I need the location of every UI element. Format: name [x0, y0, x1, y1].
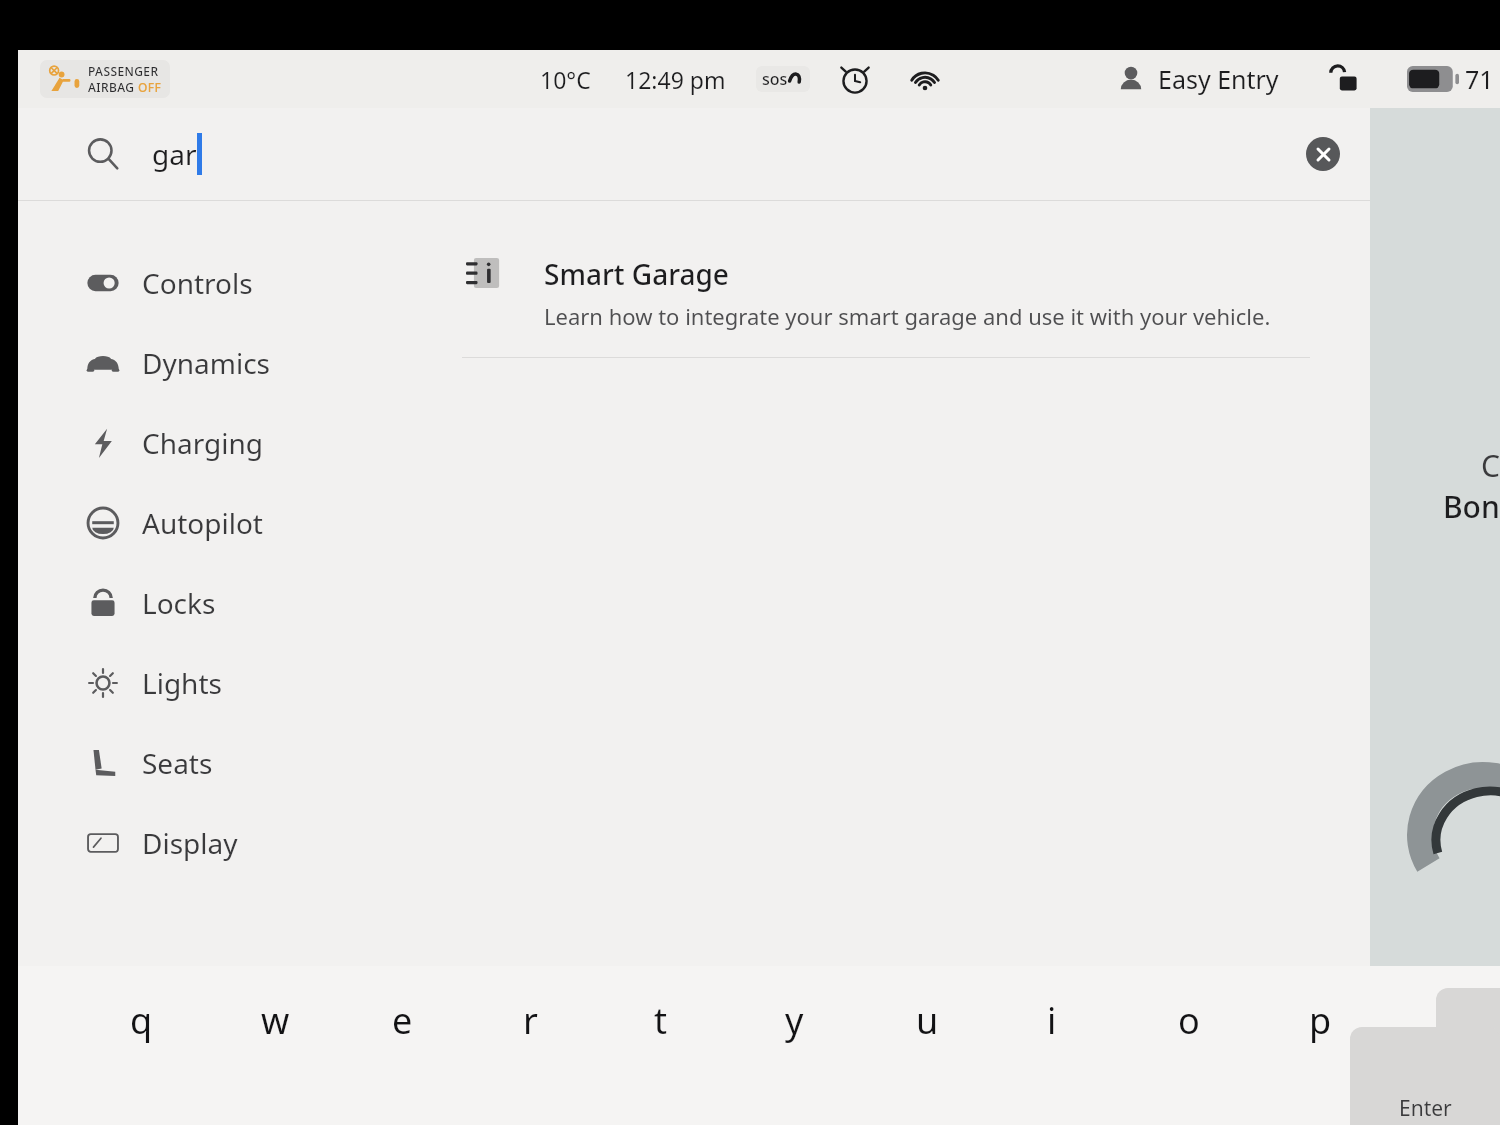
staticText: Smart Garage	[544, 255, 729, 293]
button[interactable]: r	[523, 996, 654, 1070]
staticText: o	[1178, 996, 1200, 1045]
button[interactable]: t	[654, 996, 785, 1070]
staticText: Autopilot	[142, 504, 263, 542]
staticText: Controls	[142, 264, 253, 302]
button[interactable]: 10°C	[540, 64, 591, 95]
staticText: w	[261, 996, 290, 1045]
button[interactable]: Autopilot	[18, 483, 448, 563]
button[interactable]: w	[261, 996, 392, 1070]
staticText: C	[1481, 445, 1500, 486]
staticText: Locks	[142, 584, 216, 622]
staticText: i	[1047, 996, 1057, 1045]
button[interactable]: y	[785, 996, 916, 1070]
button[interactable]: Wi-Fi	[908, 62, 942, 96]
staticText: 71	[1465, 62, 1494, 96]
button[interactable]: Charging	[18, 403, 448, 483]
button[interactable]: Lights	[18, 643, 448, 723]
button[interactable]: p	[1309, 996, 1440, 1070]
button[interactable]: Clear search	[1306, 137, 1340, 171]
staticText: gar	[152, 135, 197, 173]
staticText: AIRBAG	[88, 79, 138, 95]
staticText: PASSENGER	[88, 63, 159, 79]
button[interactable]: Unlocked	[1325, 60, 1363, 98]
staticText: Bon	[1443, 486, 1500, 527]
button[interactable]: Locks	[18, 563, 448, 643]
button[interactable]: e	[392, 996, 523, 1070]
staticText: Lights	[142, 664, 222, 702]
staticText: Easy Entry	[1158, 62, 1279, 96]
button[interactable]: Smart Garage	[448, 231, 1370, 357]
staticText: q	[130, 996, 153, 1045]
staticText: y	[785, 996, 804, 1045]
button[interactable]: 12:49 pm	[625, 64, 726, 95]
staticText: r	[523, 996, 538, 1045]
button[interactable]: gar	[18, 108, 1370, 200]
button[interactable]: q	[130, 996, 261, 1070]
button[interactable]: Display	[18, 803, 448, 883]
staticText: Dynamics	[142, 344, 270, 382]
button[interactable]: SOS	[756, 66, 810, 92]
button[interactable]: o	[1178, 996, 1309, 1070]
button[interactable]: PASSENGER	[40, 60, 170, 98]
staticText: Enter	[1399, 1094, 1452, 1123]
button[interactable]: Dynamics	[18, 323, 448, 403]
button[interactable]: Controls	[18, 243, 448, 323]
staticText: u	[916, 996, 939, 1045]
staticText: Display	[142, 824, 238, 862]
staticText: sos	[762, 68, 788, 90]
button[interactable]: i	[1047, 996, 1178, 1070]
staticText: OFF	[138, 79, 162, 95]
button[interactable]: Enter	[1350, 1027, 1500, 1125]
button[interactable]: Alarm	[838, 62, 872, 96]
staticText: t	[654, 996, 667, 1045]
button[interactable]: Easy Entry	[1116, 62, 1279, 96]
staticText: e	[392, 996, 413, 1045]
staticText: p	[1309, 996, 1332, 1045]
staticText: Seats	[142, 744, 213, 782]
button[interactable]: u	[916, 996, 1047, 1070]
button[interactable]: Seats	[18, 723, 448, 803]
staticText: Learn how to integrate your smart garage…	[544, 301, 1271, 331]
staticText: Charging	[142, 424, 263, 462]
